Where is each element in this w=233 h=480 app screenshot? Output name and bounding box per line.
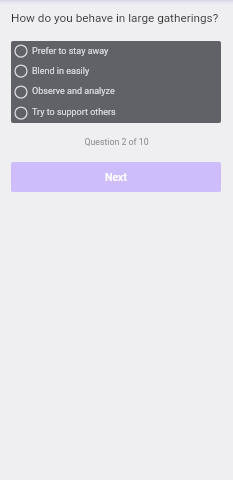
- staticText: Observe and analyze: [32, 86, 115, 97]
- button[interactable]: Try to support others: [11, 102, 221, 123]
- button[interactable]: Observe and analyze: [11, 81, 221, 102]
- staticText: Blend in easily: [32, 66, 90, 77]
- button[interactable]: Blend in easily: [11, 61, 221, 81]
- staticText: How do you behave in large gatherings?: [11, 11, 219, 25]
- staticText: Try to support others: [32, 107, 116, 118]
- staticText: Prefer to stay away: [32, 46, 109, 57]
- button[interactable]: Prefer to stay away: [11, 41, 221, 61]
- staticText: Question 2 of 10: [0, 137, 233, 147]
- staticText: Next: [105, 171, 127, 183]
- button[interactable]: Next: [11, 162, 221, 192]
